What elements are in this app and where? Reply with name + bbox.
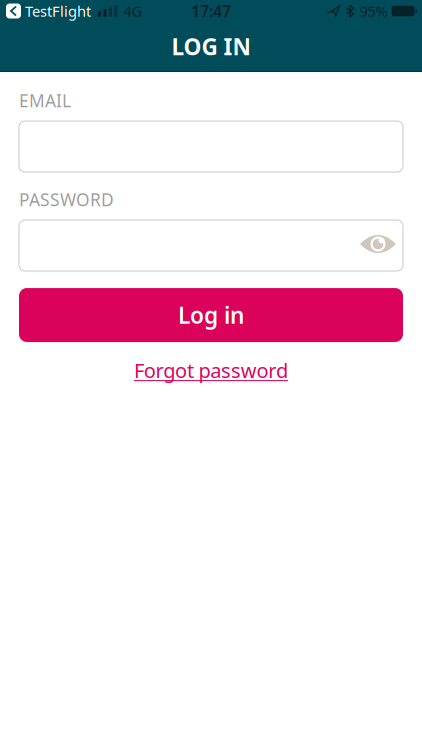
- staticText: Log in: [178, 300, 244, 330]
- staticText: TestFlight: [25, 1, 91, 21]
- button[interactable]: Show password: [360, 234, 396, 253]
- staticText: 95%: [359, 1, 387, 21]
- staticText: 4G: [123, 1, 142, 21]
- staticText: Forgot password: [134, 357, 288, 384]
- button[interactable]: Log in: [19, 288, 403, 342]
- staticText: 17:47: [191, 0, 231, 22]
- staticText: EMAIL: [19, 89, 71, 112]
- staticText: PASSWORD: [19, 188, 114, 211]
- button[interactable]: Back to TestFlight: [6, 1, 91, 21]
- staticText: LOG IN: [171, 31, 250, 61]
- button[interactable]: Forgot password: [134, 357, 288, 384]
